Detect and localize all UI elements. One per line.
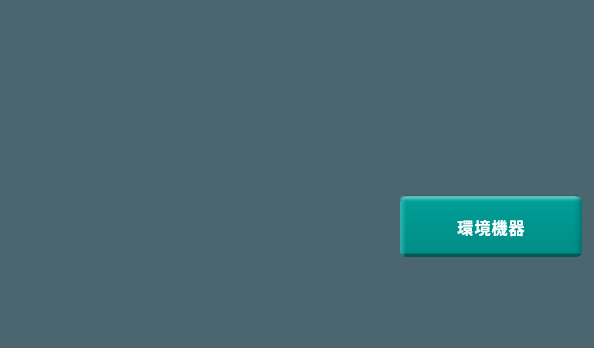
button[interactable]: 環境機器	[400, 195, 582, 257]
staticText: 環境機器	[457, 215, 526, 238]
